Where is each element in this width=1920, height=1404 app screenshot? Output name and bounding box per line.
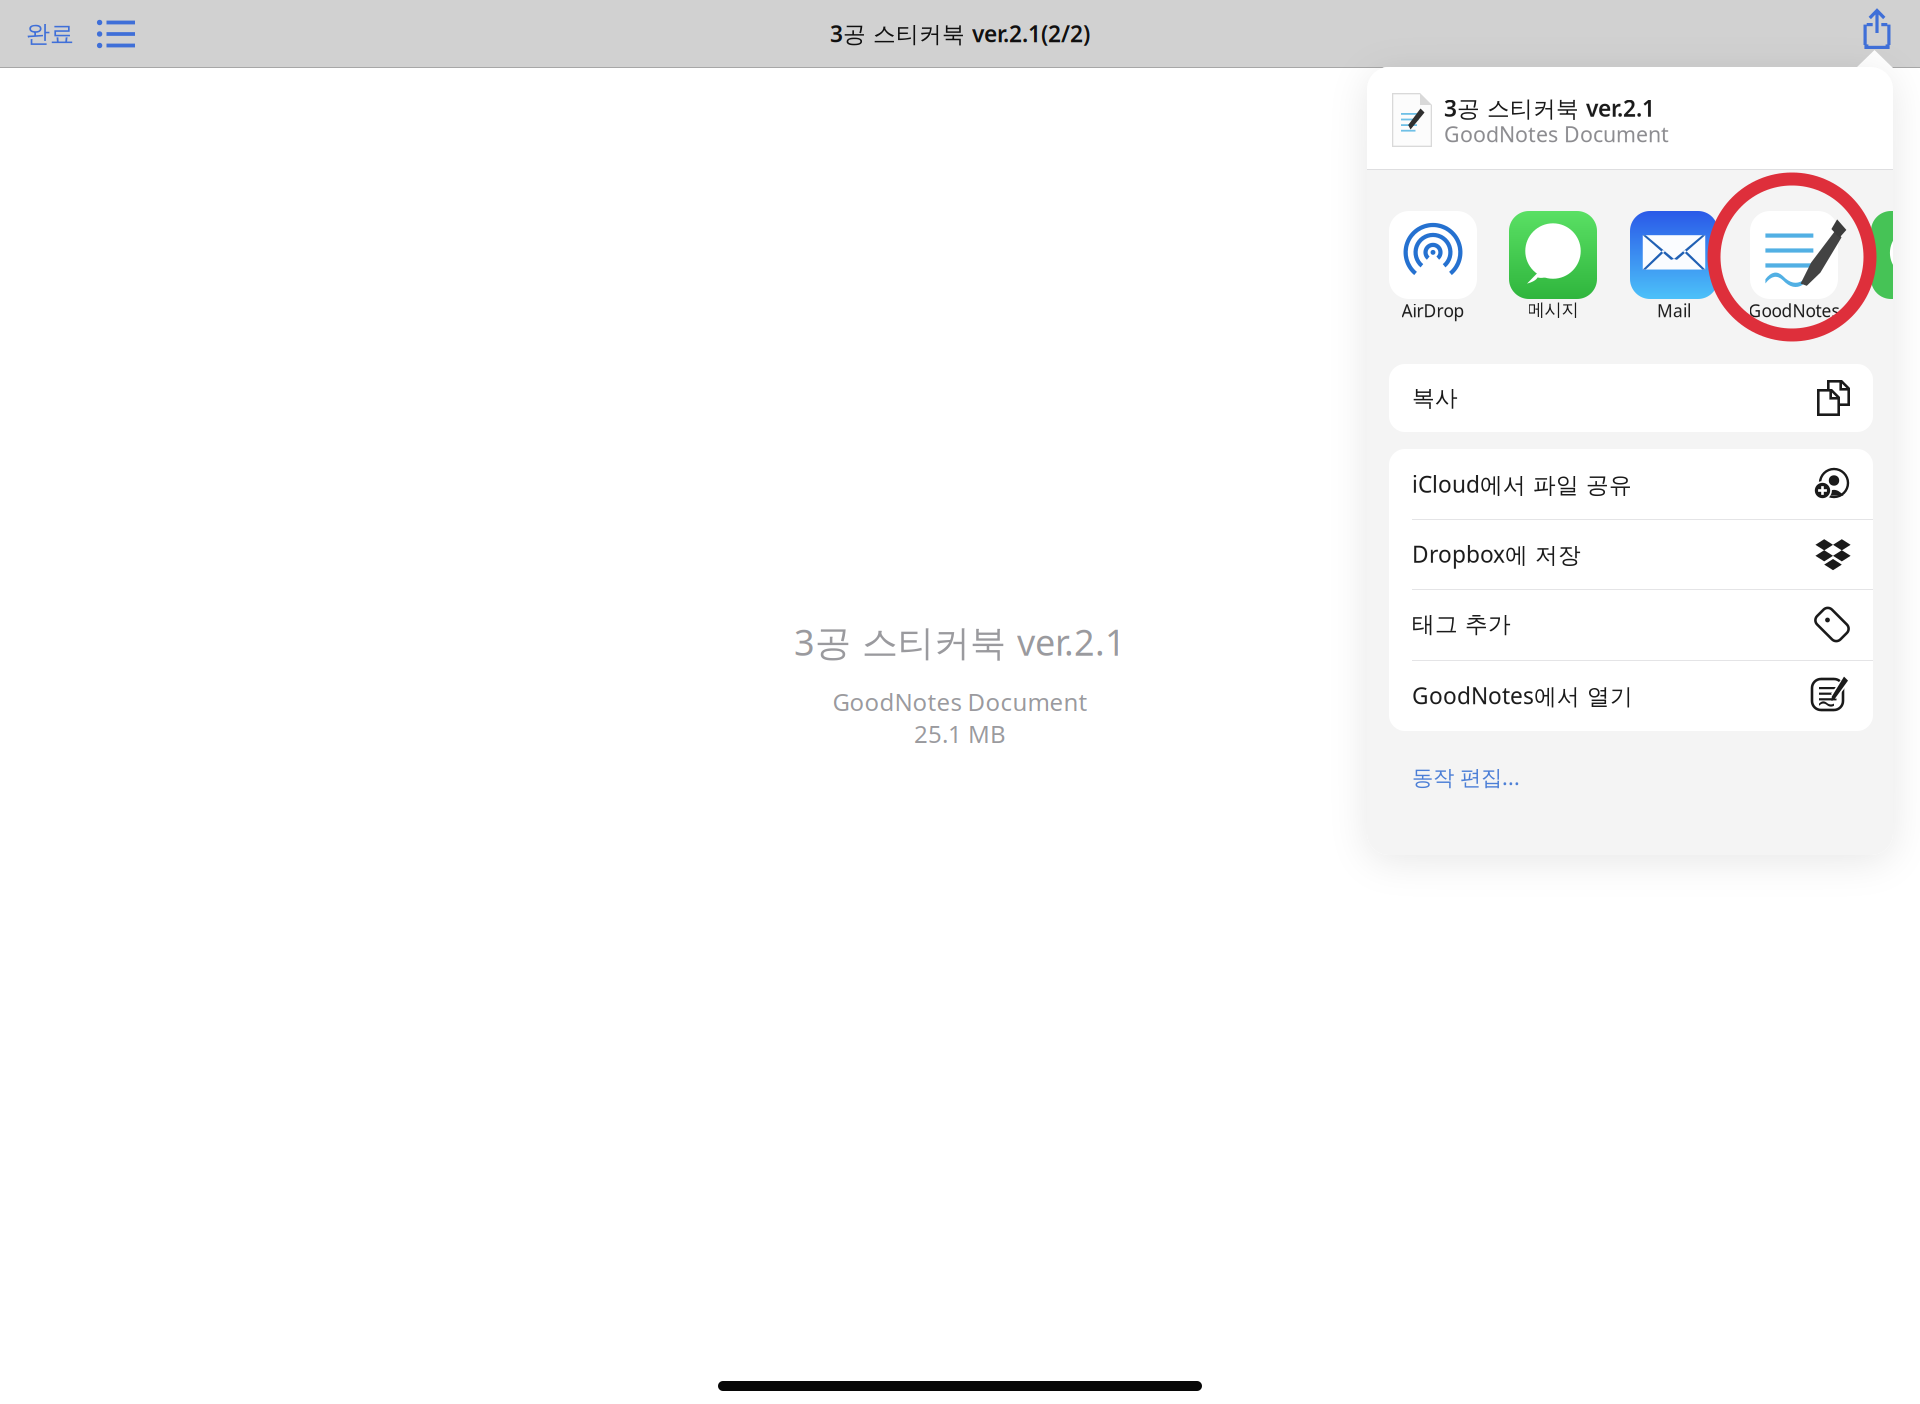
staticText: Mail [1657, 299, 1691, 322]
staticText: Dropbox에 저장 [1412, 539, 1581, 569]
staticText: 동작 편집... [1412, 763, 1520, 791]
button[interactable]: W [1855, 211, 1920, 341]
button[interactable]: 완료 [16, 10, 84, 58]
button[interactable]: 동작 편집... [1412, 757, 1812, 797]
staticText: 메시지 [1527, 299, 1578, 320]
staticText: GoodNotes Document [832, 686, 1087, 718]
staticText: GoodNotes에서 열기 [1412, 680, 1633, 711]
staticText: 25.1 MB [914, 718, 1006, 750]
button[interactable]: Share [1849, 0, 1905, 57]
staticText: GoodNotes [1748, 299, 1839, 322]
button[interactable]: 복사 [1389, 364, 1873, 432]
staticText: 복사 [1412, 384, 1458, 412]
button[interactable]: Mail [1614, 211, 1734, 341]
button[interactable]: GoodNotes에서 열기 [1389, 660, 1873, 731]
staticText: iCloud에서 파일 공유 [1412, 469, 1632, 499]
staticText: GoodNotes Document [1444, 120, 1669, 148]
staticText: AirDrop [1401, 299, 1464, 322]
staticText: 3공 스티커북 ver.2.1(2/2) [830, 18, 1090, 48]
button[interactable]: 메시지 [1493, 211, 1613, 341]
button[interactable]: View options [89, 10, 143, 58]
button[interactable]: Dropbox에 저장 [1389, 519, 1873, 589]
button[interactable]: 태그 추가 [1389, 589, 1873, 660]
button[interactable]: GoodNotes [1734, 211, 1854, 341]
staticText: 3공 스티커북 ver.2.1 [1444, 93, 1655, 123]
button[interactable]: iCloud에서 파일 공유 [1389, 449, 1873, 519]
staticText: 완료 [26, 19, 74, 49]
button[interactable]: AirDrop [1373, 211, 1493, 341]
staticText: 태그 추가 [1412, 611, 1511, 638]
staticText: 3공 스티커북 ver.2.1 [794, 618, 1126, 666]
